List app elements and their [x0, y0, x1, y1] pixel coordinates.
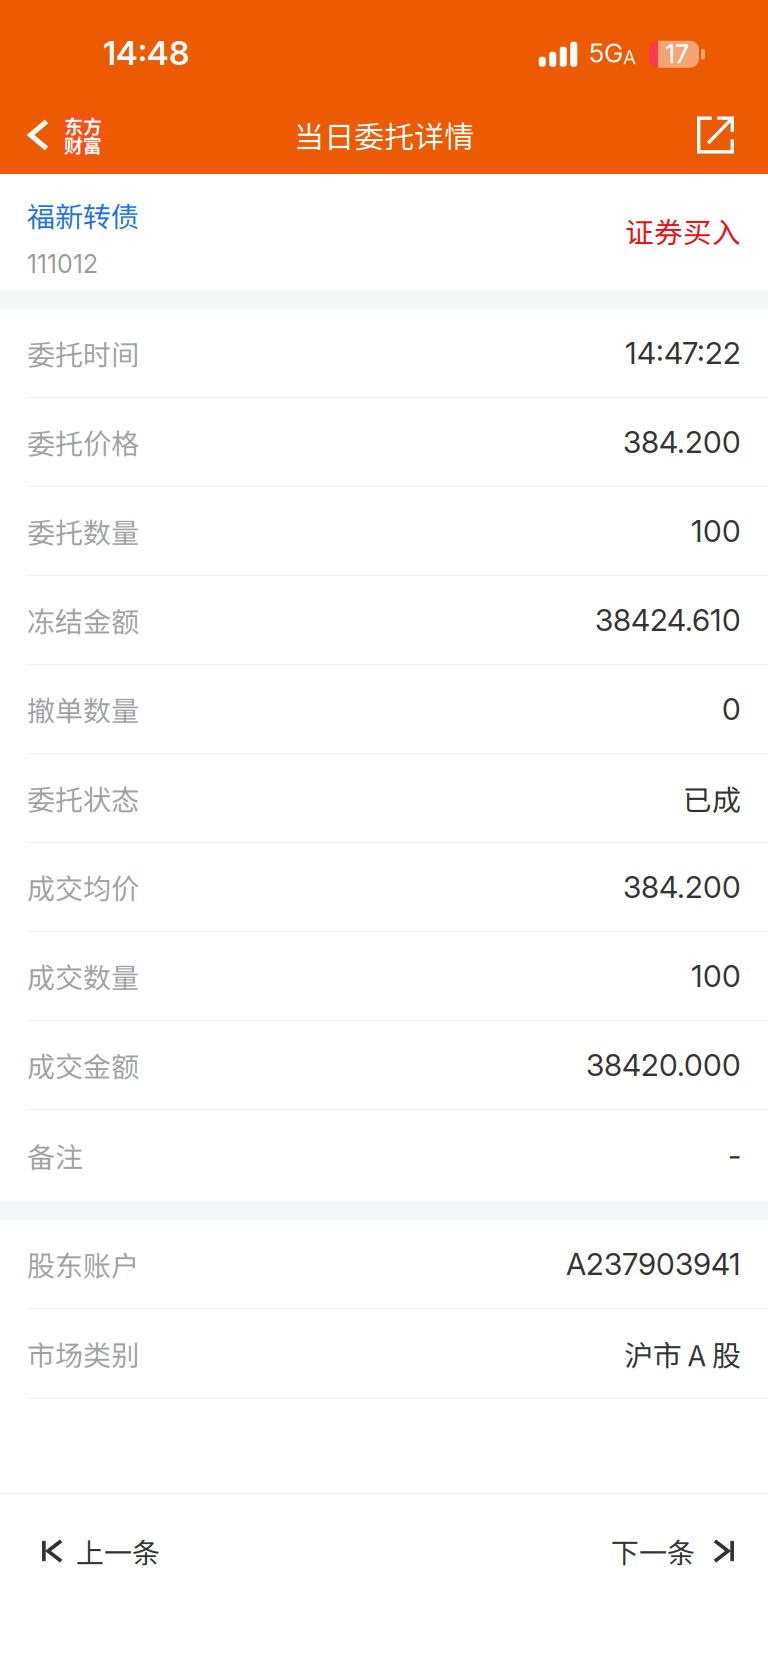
button[interactable]: 分享 [671, 96, 768, 174]
staticText: 委托时间 [27, 333, 139, 373]
staticText: 上一条 [76, 1531, 160, 1571]
staticText: 冻结金额 [27, 600, 139, 640]
staticText: 384.200 [623, 869, 741, 905]
staticText: 111012 [27, 249, 98, 279]
staticText: 5G [589, 37, 623, 69]
staticText: 成交数量 [27, 956, 139, 996]
staticText: 0 [722, 691, 741, 727]
staticText: 东方 [64, 112, 102, 139]
staticText: 股东账户 [27, 1244, 139, 1284]
staticText: 100 [691, 958, 741, 994]
button[interactable]: 返回东方财富 [0, 96, 119, 174]
staticText: 委托数量 [27, 511, 139, 551]
staticText: 委托状态 [27, 778, 139, 818]
staticText: 成交均价 [27, 867, 139, 907]
button[interactable]: 下一条 [581, 1494, 768, 1608]
staticText: 17 [665, 39, 689, 69]
staticText: 委托价格 [27, 422, 139, 462]
staticText: 38420.000 [586, 1047, 741, 1083]
staticText: A237903941 [566, 1246, 741, 1282]
staticText: 下一条 [611, 1531, 695, 1571]
staticText: 100 [691, 513, 741, 549]
staticText: 成交金额 [27, 1045, 139, 1085]
staticText: 已成 [683, 777, 741, 819]
staticText: 当日委托详情 [294, 113, 474, 157]
staticText: 备注 [27, 1135, 83, 1176]
staticText: 证券买入 [625, 210, 741, 251]
staticText: 财富 [64, 131, 102, 158]
staticText: - [728, 1137, 741, 1174]
staticText: 沪市 A 股 [624, 1332, 741, 1374]
staticText: 14:48 [103, 33, 189, 73]
staticText: 撤单数量 [27, 689, 139, 729]
staticText: 市场类别 [27, 1333, 139, 1374]
staticText: 38424.610 [595, 602, 741, 638]
staticText: 14:47:22 [625, 335, 741, 371]
staticText: 福新转债 [27, 195, 139, 235]
staticText: A [623, 46, 636, 69]
staticText: 384.200 [623, 424, 741, 460]
button[interactable]: 上一条 [0, 1494, 190, 1608]
